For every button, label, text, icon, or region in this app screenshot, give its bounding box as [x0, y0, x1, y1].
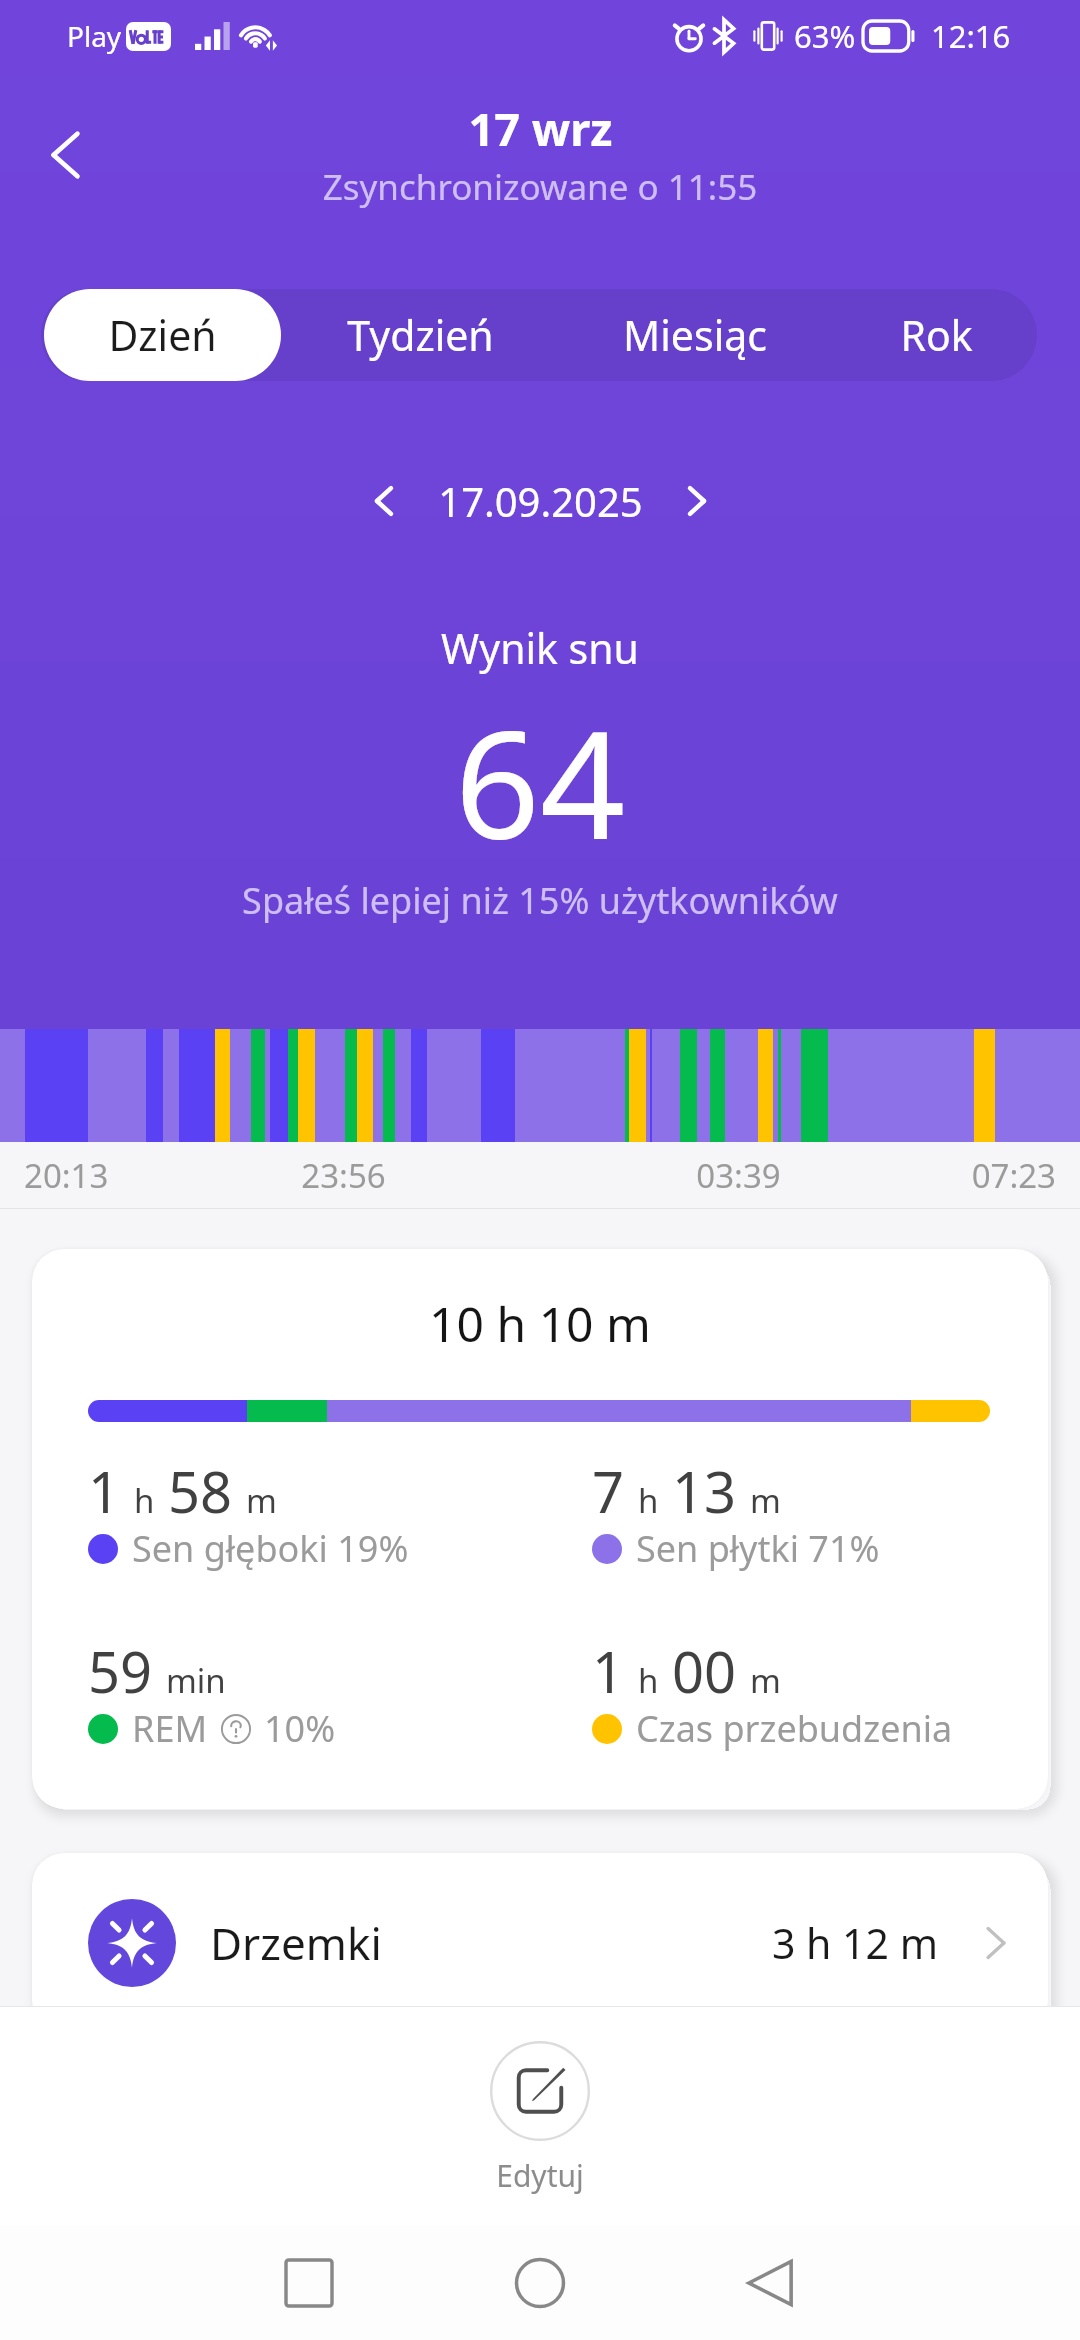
staticText: 07:23	[971, 1153, 1056, 1198]
staticText: 17.09.2025	[438, 474, 643, 528]
staticText: REM	[132, 1704, 208, 1753]
staticText: 64	[0, 680, 1080, 883]
staticText: 17 wrz	[468, 98, 613, 159]
button[interactable]: Previous day	[348, 465, 420, 537]
button[interactable]: Dzień	[44, 289, 281, 381]
staticText: Rok	[900, 307, 973, 363]
staticText: 1	[88, 1453, 121, 1529]
staticText: 20:13	[24, 1153, 109, 1198]
staticText: Spałeś lepiej niż 15% użytkowników	[0, 876, 1080, 925]
staticText: 10%	[264, 1704, 336, 1753]
staticText: 3 h 12 m	[771, 1915, 938, 1971]
button[interactable]: Back	[20, 113, 112, 197]
button[interactable]: Drzemki	[32, 1853, 1048, 2033]
button[interactable]: Edytuj	[0, 2007, 1080, 2225]
staticText: 12:16	[931, 15, 1011, 57]
staticText: Tydzień	[347, 307, 494, 363]
staticText: Miesiąc	[623, 307, 767, 363]
staticText: m	[750, 1658, 781, 1703]
button[interactable]: Home	[500, 2243, 580, 2323]
staticText: Sen głęboki 19%	[132, 1524, 409, 1573]
staticText: Zsynchronizowane o 11:55	[0, 163, 1080, 211]
staticText: Sen płytki 71%	[636, 1524, 880, 1573]
staticText: Play	[67, 17, 122, 55]
staticText: Czas przebudzenia	[636, 1704, 953, 1753]
staticText: m	[246, 1478, 277, 1523]
staticText: Drzemki	[210, 1913, 382, 1973]
button[interactable]: Rok	[832, 289, 1040, 381]
button[interactable]: Recents	[269, 2243, 349, 2323]
button[interactable]: Back	[730, 2243, 810, 2323]
staticText: 13	[672, 1453, 737, 1529]
staticText: 63%	[794, 15, 856, 57]
staticText: 58	[168, 1453, 233, 1529]
staticText: min	[166, 1658, 226, 1703]
button[interactable]: Next day	[661, 465, 733, 537]
button[interactable]: Miesiąc	[558, 289, 832, 381]
staticText: 10 h 10 m	[32, 1291, 1048, 1356]
staticText: Dzień	[108, 307, 217, 363]
staticText: m	[750, 1478, 781, 1523]
staticText: 03:39	[696, 1153, 781, 1198]
staticText: 23:56	[301, 1153, 386, 1198]
staticText: Edytuj	[496, 2155, 584, 2196]
button[interactable]: Tydzień	[282, 289, 559, 381]
staticText: 1	[592, 1633, 625, 1709]
staticText: 7	[592, 1453, 625, 1529]
staticText: 59	[88, 1633, 153, 1709]
staticText: h	[134, 1478, 155, 1523]
staticText: h	[638, 1478, 659, 1523]
staticText: 00	[672, 1633, 737, 1709]
staticText: h	[638, 1658, 659, 1703]
staticText: Wynik snu	[0, 620, 1080, 676]
